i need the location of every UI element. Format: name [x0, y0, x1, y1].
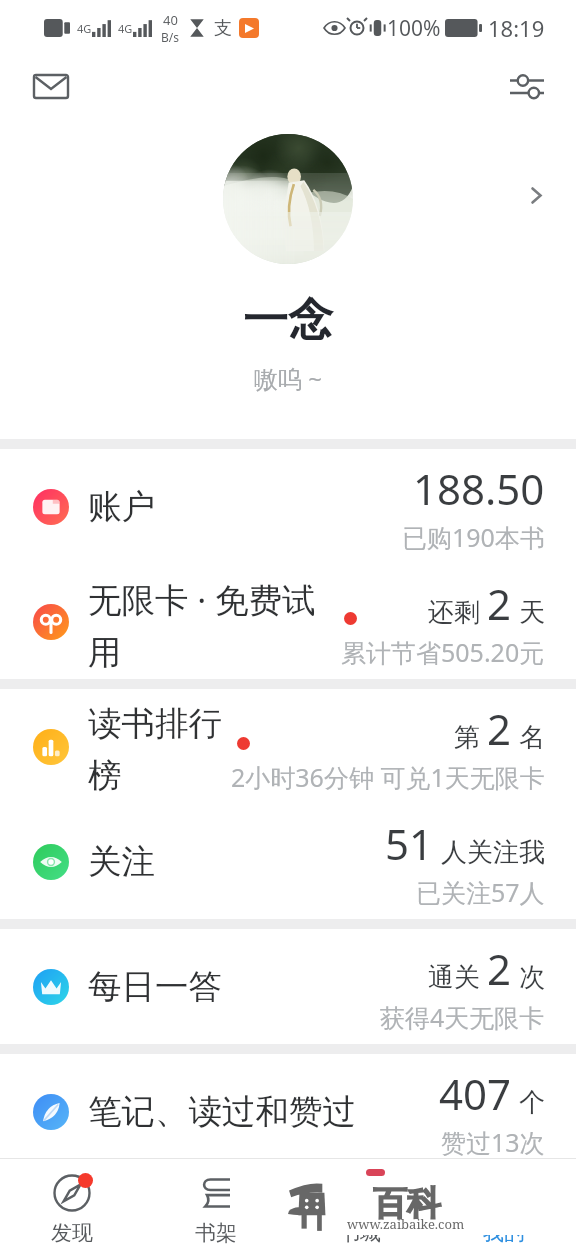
staticText: 一念	[243, 292, 333, 349]
staticText: 40	[163, 11, 178, 29]
button[interactable]: 无限卡 · 免费试用	[0, 564, 576, 679]
button[interactable]: 一念	[0, 117, 576, 395]
staticText: 个	[519, 1086, 545, 1119]
button[interactable]: 读书排行榜	[0, 689, 576, 804]
staticText: www.zaibaike.com	[347, 1215, 465, 1233]
staticText: 书架	[195, 1220, 237, 1246]
staticText: 百科	[373, 1182, 441, 1225]
staticText: 4G	[77, 21, 92, 36]
staticText: 4G	[118, 21, 133, 36]
button[interactable]: 书架	[144, 1159, 288, 1246]
button[interactable]: 账户	[0, 449, 576, 564]
staticText: 已关注57人	[416, 875, 545, 909]
staticText: 关注	[88, 841, 155, 883]
staticText: 2	[487, 575, 512, 632]
button[interactable]: 我的	[432, 1159, 576, 1246]
staticText: 51	[385, 815, 434, 872]
staticText: 我的	[483, 1220, 525, 1246]
button[interactable]: 书城	[288, 1159, 432, 1246]
button[interactable]: Profile detail	[516, 175, 556, 215]
staticText: 人关注我	[441, 836, 545, 869]
staticText: 18:19	[488, 13, 545, 43]
staticText: 通关	[428, 961, 480, 994]
staticText: 每日一答	[88, 966, 222, 1008]
staticText: 发现	[51, 1220, 93, 1246]
staticText: 读书排行榜	[88, 703, 223, 797]
staticText: 嗷呜 ~	[254, 362, 322, 395]
staticText: 天	[519, 596, 545, 629]
button[interactable]: 笔记、读过和赞过	[0, 1054, 576, 1169]
staticText: B/s	[161, 29, 180, 45]
staticText: 赞过13次	[441, 1125, 545, 1159]
staticText: 无限卡 · 免费试用	[88, 576, 333, 674]
staticText: 2	[487, 940, 512, 997]
staticText: 还剩	[428, 596, 480, 629]
button[interactable]: Messages	[23, 58, 79, 114]
staticText: 407	[439, 1065, 512, 1122]
staticText: 188.50	[413, 460, 545, 517]
staticText: 名	[519, 721, 545, 754]
staticText: 笔记、读过和赞过	[88, 1091, 356, 1133]
staticText: 支	[214, 17, 232, 40]
staticText: 账户	[88, 486, 155, 528]
button[interactable]: 关注	[0, 804, 576, 919]
staticText: 获得4天无限卡	[380, 1000, 545, 1034]
staticText: 已购190本书	[402, 520, 545, 554]
staticText: 2	[487, 700, 512, 757]
button[interactable]: 每日一答	[0, 929, 576, 1044]
staticText: 累计节省505.20元	[341, 635, 545, 669]
staticText: 2小时36分钟 可兑1天无限卡	[231, 760, 545, 794]
staticText: 第	[454, 721, 480, 754]
staticText: 次	[519, 961, 545, 994]
button[interactable]: 发现	[0, 1159, 144, 1246]
staticText: 书城	[339, 1220, 381, 1246]
button[interactable]: Settings	[499, 58, 555, 114]
staticText: 100%	[387, 14, 441, 43]
